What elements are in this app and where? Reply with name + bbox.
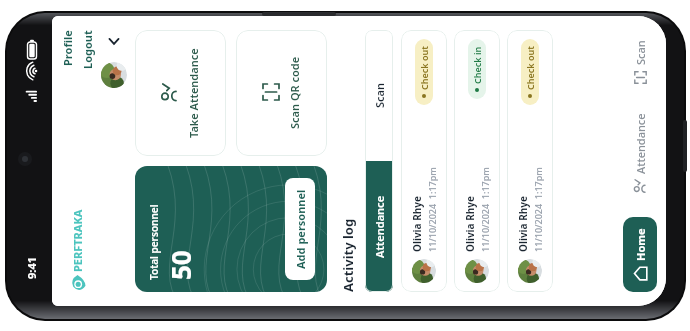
staticText: Scan: [633, 40, 648, 65]
button[interactable]: Attendance: [623, 113, 657, 194]
button[interactable]: Total personnel: [135, 166, 327, 292]
button[interactable]: Scan: [623, 40, 657, 85]
staticText: 9:41: [24, 257, 39, 279]
staticText: Total personnel: [147, 204, 161, 280]
staticText: Olivia Rhye: [463, 196, 477, 252]
button[interactable]: Scan QR code: [236, 30, 327, 156]
staticText: Scan QR code: [287, 56, 302, 129]
button[interactable]: Home: [623, 228, 657, 281]
staticText: Scan: [372, 82, 387, 108]
staticText: Logout: [80, 30, 95, 69]
staticText: Check out: [418, 46, 430, 90]
staticText: Profile: [60, 30, 75, 66]
button[interactable]: PERFTRAKA: [69, 209, 86, 292]
button[interactable]: Add personnel: [285, 178, 315, 280]
staticText: Attendance: [633, 113, 648, 174]
button[interactable]: Olivia Rhye: [507, 39, 553, 283]
button[interactable]: Scan: [365, 30, 393, 161]
staticText: Activity log: [339, 218, 357, 292]
staticText: Add personnel: [293, 189, 308, 269]
staticText: 11/10/2024 1:17pm: [426, 167, 438, 252]
button[interactable]: Olivia Rhye: [454, 39, 500, 283]
staticText: Attendance: [372, 195, 387, 258]
staticText: Olivia Rhye: [516, 196, 530, 252]
staticText: Check out: [524, 46, 536, 90]
staticText: Take Attendance: [186, 48, 201, 138]
staticText: Check in: [471, 46, 483, 84]
button[interactable]: Take Attendance: [135, 30, 226, 156]
staticText: 11/10/2024 1:17pm: [532, 167, 544, 252]
button[interactable]: Attendance: [365, 161, 393, 292]
staticText: Olivia Rhye: [410, 196, 424, 252]
button[interactable]: Back: [103, 30, 125, 52]
staticText: PERFTRAKA: [70, 209, 85, 272]
button[interactable]: Olivia Rhye: [401, 39, 447, 283]
staticText: Home: [633, 228, 648, 261]
staticText: 11/10/2024 1:17pm: [479, 167, 491, 252]
staticText: 50: [163, 250, 198, 280]
